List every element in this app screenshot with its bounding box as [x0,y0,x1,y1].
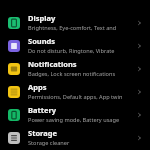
staticText: Display [28,13,56,23]
staticText: Brightness, Eye-comfort, Text and displa… [28,24,136,32]
staticText: Battery [28,105,57,115]
staticText: Power saving mode, Battery usage [28,116,120,124]
staticText: Sounds [28,36,56,46]
button[interactable]: Sounds [0,34,150,57]
staticText: Permissions, Default apps, App twin [28,93,123,101]
button[interactable]: Apps [0,80,150,103]
staticText: Do not disturb, Ringtone, Vibrate [28,47,115,55]
button[interactable]: Storage [0,126,150,149]
button[interactable]: Display [0,11,150,34]
staticText: Storage cleaner [28,139,70,147]
staticText: Notifications [28,59,77,69]
staticText: Apps [28,82,47,92]
button[interactable]: Battery [0,103,150,126]
button[interactable]: Notifications [0,57,150,80]
staticText: Storage [28,128,57,138]
staticText: Badges, Lock screen notifications [28,70,116,78]
